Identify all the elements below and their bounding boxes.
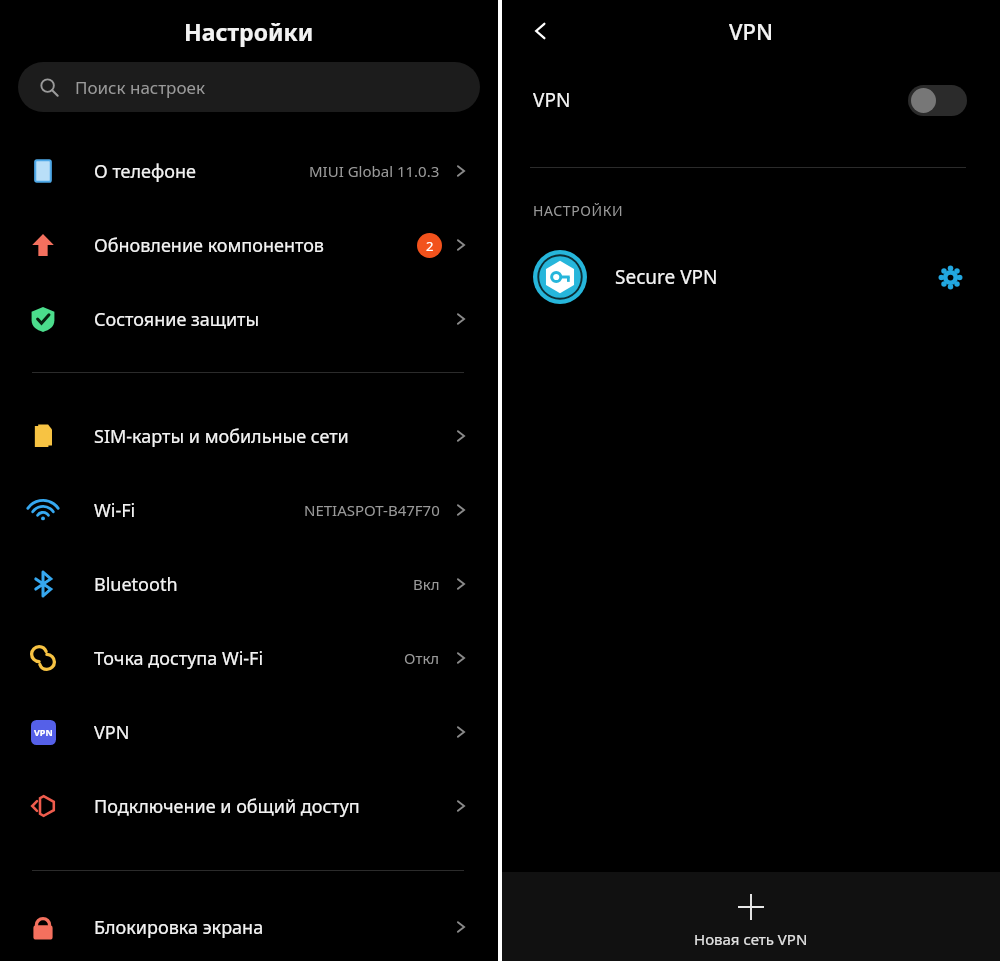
staticText: SIM-карты и мобильные сети <box>94 424 450 449</box>
staticText: NETIASPOT-B47F70 <box>304 500 440 520</box>
button[interactable]: О телефоне <box>0 134 498 208</box>
button[interactable]: Wi-Fi <box>0 473 498 547</box>
button[interactable]: Secure VPN settings <box>930 257 970 297</box>
staticText: Состояние защиты <box>94 307 450 332</box>
button[interactable]: Secure VPN <box>502 244 1000 310</box>
staticText: Блокировка экрана <box>94 915 450 940</box>
staticText: Wi-Fi <box>94 498 304 523</box>
staticText: Вкл <box>413 574 440 594</box>
button[interactable]: Новая сеть VPN <box>502 872 1000 961</box>
staticText: Откл <box>404 648 440 668</box>
staticText: О телефоне <box>94 159 309 184</box>
staticText: Подключение и общий доступ <box>94 794 450 819</box>
button[interactable]: Обновление компонентов <box>0 208 498 282</box>
button[interactable]: Точка доступа Wi-Fi <box>0 621 498 695</box>
button[interactable]: SIM-карты и мобильные сети <box>0 399 498 473</box>
button[interactable]: Блокировка экрана <box>0 893 498 961</box>
staticText: Поиск настроек <box>75 76 205 99</box>
staticText: 2 <box>426 237 434 255</box>
staticText: VPN <box>729 16 774 46</box>
staticText: MIUI Global 11.0.3 <box>309 161 440 181</box>
staticText: НАСТРОЙКИ <box>533 201 624 220</box>
button[interactable]: Подключение и общий доступ <box>0 769 498 843</box>
button[interactable]: Bluetooth <box>0 547 498 621</box>
staticText: VPN <box>533 87 908 113</box>
staticText: Новая сеть VPN <box>694 929 808 949</box>
staticText: Настройки <box>184 16 314 47</box>
button[interactable]: Back <box>518 8 564 54</box>
staticText: Secure VPN <box>615 264 930 290</box>
button[interactable]: Поиск настроек <box>18 62 480 112</box>
button[interactable]: VPN <box>0 695 498 769</box>
button[interactable]: VPN <box>502 62 1000 138</box>
staticText: Точка доступа Wi-Fi <box>94 646 404 671</box>
staticText: VPN <box>94 720 450 745</box>
button[interactable]: VPN toggle <box>908 85 967 116</box>
staticText: Bluetooth <box>94 572 413 597</box>
staticText: VPN <box>34 726 53 738</box>
button[interactable]: Состояние защиты <box>0 282 498 356</box>
staticText: Обновление компонентов <box>94 233 417 258</box>
